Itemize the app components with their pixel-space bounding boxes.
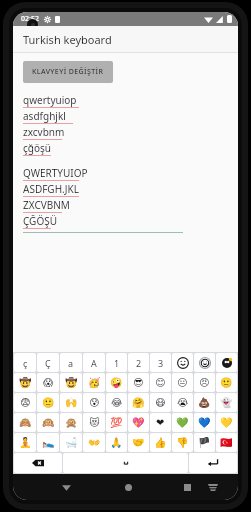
button[interactable]: 🥳 [83, 373, 105, 392]
button[interactable]: 😻 [83, 413, 105, 432]
button[interactable]: Emoji stickers [216, 353, 237, 372]
button[interactable]: Space [63, 453, 188, 473]
button[interactable]: 👐 [83, 433, 105, 452]
button[interactable]: 🙂 [37, 393, 59, 412]
button[interactable]: 💩 [194, 393, 215, 412]
staticText: 🛌 [42, 437, 55, 449]
button[interactable]: 🙉 [37, 413, 59, 432]
button[interactable]: KLAVYEYİ DEĞİŞTİR [23, 61, 113, 83]
button[interactable]: 🤗 [128, 393, 149, 412]
button[interactable]: 🤠 [14, 373, 36, 392]
button[interactable]: 🤠 [60, 373, 82, 392]
staticText: 😷 [155, 397, 166, 409]
button[interactable]: 💙 [194, 413, 215, 432]
staticText: 🛁 [65, 437, 78, 449]
button[interactable]: 2 [128, 353, 149, 372]
button[interactable]: 1 [106, 353, 127, 372]
button[interactable]: Emoji [172, 353, 193, 372]
staticText: 💚 [176, 417, 189, 429]
button[interactable]: 😰 [83, 393, 105, 412]
button[interactable]: 😨 [14, 393, 36, 412]
button[interactable]: ç [14, 353, 36, 372]
button[interactable]: ❤️ [150, 413, 171, 432]
staticText: 😎 [133, 377, 144, 389]
button[interactable]: 💛 [216, 413, 237, 432]
staticText: 💩 [198, 397, 211, 409]
staticText: KLAVYEYİ DEĞİŞTİR [32, 67, 104, 77]
staticText: 👎 [176, 437, 189, 449]
staticText: asdfghjkl [23, 109, 66, 123]
button[interactable]: 👍 [150, 433, 171, 452]
staticText: 🇹🇷 [220, 437, 233, 449]
staticText: A [91, 357, 97, 369]
button[interactable]: Back [55, 476, 77, 498]
button[interactable]: 😂 [106, 393, 127, 412]
staticText: 🙊 [65, 417, 78, 429]
staticText: çğöşü [23, 141, 51, 155]
staticText: 🤗 [132, 397, 145, 409]
staticText: 😻 [89, 417, 100, 429]
staticText: 02:52 [21, 14, 39, 24]
button[interactable]: 🏴 [194, 433, 215, 452]
button[interactable]: Emoji category selected [194, 353, 215, 372]
button[interactable]: Ç [37, 353, 59, 372]
staticText: 👻 [220, 397, 233, 409]
button[interactable]: 🧘 [14, 433, 36, 452]
staticText: 🙏 [110, 437, 123, 449]
button[interactable]: 🙊 [60, 413, 82, 432]
staticText: 😭 [177, 397, 189, 409]
button[interactable]: 👎 [172, 433, 193, 452]
button[interactable]: 😠 [194, 373, 215, 392]
staticText: 🤠 [65, 377, 78, 389]
staticText: 🥳 [88, 377, 101, 389]
staticText: ❤️ [156, 417, 165, 429]
staticText: zxcvbnm [23, 125, 65, 139]
button[interactable]: 🛌 [37, 433, 59, 452]
button[interactable]: 🙏 [106, 433, 127, 452]
button[interactable]: 3 [150, 353, 171, 372]
button[interactable]: Recents [176, 476, 198, 498]
staticText: 😊 [155, 377, 166, 389]
button[interactable]: 💖 [128, 413, 149, 432]
button[interactable]: Switch keyboard [202, 476, 224, 498]
button[interactable]: 🤪 [106, 373, 127, 392]
staticText: 😂 [111, 397, 123, 409]
staticText: a [68, 357, 74, 369]
button[interactable]: 😭 [172, 393, 193, 412]
staticText: 2 [136, 357, 142, 369]
button[interactable]: 🙌 [60, 393, 82, 412]
staticText: 💙 [198, 417, 211, 429]
staticText: 🤝 [132, 437, 145, 449]
button[interactable]: a [60, 353, 82, 372]
button[interactable]: 😐 [172, 373, 193, 392]
button[interactable]: 😱 [37, 373, 59, 392]
staticText: 👍 [154, 437, 167, 449]
button[interactable]: Backspace [14, 453, 62, 473]
button[interactable]: Enter [189, 453, 237, 473]
button[interactable]: 💚 [172, 413, 193, 432]
button[interactable]: 🛁 [60, 433, 82, 452]
staticText: 3 [158, 357, 164, 369]
button[interactable]: A [83, 353, 105, 372]
button[interactable]: 🙈 [14, 413, 36, 432]
staticText: 😨 [20, 397, 31, 409]
button[interactable]: 🤝 [128, 433, 149, 452]
staticText: 🙈 [19, 417, 32, 429]
button[interactable]: 😊 [150, 373, 171, 392]
staticText: 👐 [88, 437, 101, 449]
staticText: Turkish keyboard [23, 32, 112, 47]
button[interactable]: Home [117, 476, 139, 498]
staticText: ASDFGH.JKL [23, 182, 79, 196]
staticText: 💯 [110, 417, 123, 429]
button[interactable]: 🙂 [216, 373, 237, 392]
staticText: 🏴 [198, 437, 211, 449]
staticText: Ç [45, 357, 51, 369]
button[interactable]: 😷 [150, 393, 171, 412]
staticText: 🙌 [65, 397, 78, 409]
staticText: 🙉 [42, 417, 55, 429]
button[interactable]: 💯 [106, 413, 127, 432]
button[interactable]: 😎 [128, 373, 149, 392]
staticText: 💛 [220, 417, 233, 429]
button[interactable]: 🇹🇷 [216, 433, 237, 452]
button[interactable]: 👻 [216, 393, 237, 412]
